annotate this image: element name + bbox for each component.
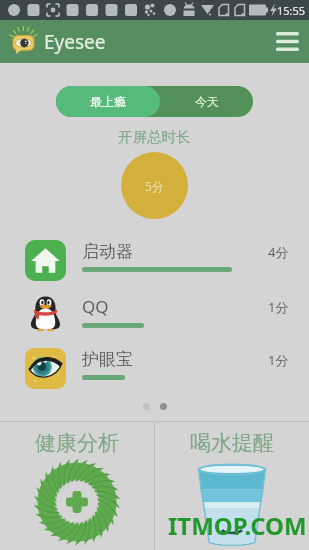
staticText: ITMOP.COM <box>168 509 307 542</box>
button[interactable]: 喝水提醒 <box>155 422 309 550</box>
button[interactable]: 健康分析 <box>0 422 154 550</box>
staticText: 启动器 <box>82 241 133 262</box>
button[interactable]: QQ <box>0 287 309 341</box>
staticText: 1分 <box>268 298 289 316</box>
staticText: 健康分析 <box>35 430 119 456</box>
button[interactable]: 最上瘾 <box>56 86 160 117</box>
button[interactable]: Menu <box>266 20 309 63</box>
staticText: 1分 <box>268 351 289 369</box>
button[interactable]: 启动器 <box>0 233 309 287</box>
staticText: QQ <box>82 295 109 318</box>
staticText: 开屏总时长 <box>118 128 191 146</box>
button[interactable]: 今天 <box>160 86 253 117</box>
staticText: 今天 <box>195 94 219 109</box>
staticText: 5分 <box>145 178 164 194</box>
staticText: 4分 <box>268 243 289 261</box>
staticText: Eyesee <box>44 29 106 55</box>
staticText: 护眼宝 <box>82 349 133 370</box>
staticText: 15:55 <box>277 3 306 18</box>
staticText: 最上瘾 <box>90 94 126 109</box>
button[interactable]: 护眼宝 <box>0 341 309 395</box>
staticText: 喝水提醒 <box>190 430 274 456</box>
